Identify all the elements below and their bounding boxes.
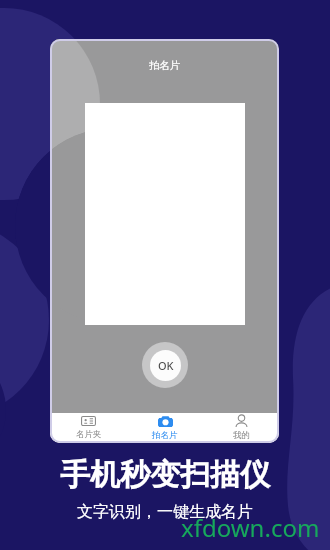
staticText: 手机秒变扫描仪 xyxy=(60,456,270,494)
button[interactable]: 我的 xyxy=(203,413,279,443)
button[interactable]: OK xyxy=(142,342,188,388)
staticText: 拍名片 xyxy=(149,59,181,72)
staticText: 名片夹 xyxy=(76,429,102,440)
staticText: xfdown.com xyxy=(181,511,320,544)
button[interactable]: 拍名片 xyxy=(127,413,203,443)
staticText: 拍名片 xyxy=(152,430,178,441)
staticText: 文字识别，一键生成名片 xyxy=(77,502,253,522)
staticText: 我的 xyxy=(233,430,250,441)
staticText: OK xyxy=(158,358,174,373)
button[interactable]: 名片夹 xyxy=(50,413,127,443)
